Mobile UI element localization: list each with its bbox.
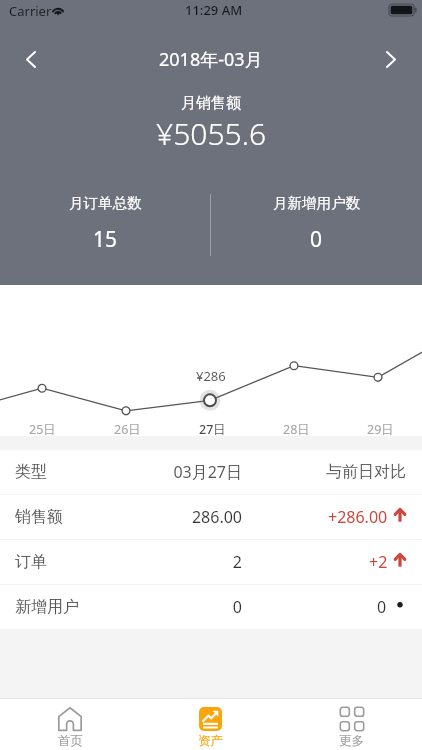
staticText: 29日 [367,421,394,436]
button[interactable]: 首页 [0,699,140,750]
staticText: ¥5055.6 [156,113,267,154]
button[interactable]: 新增用户 [0,585,422,629]
staticText: 订单 [15,552,47,572]
button[interactable]: 更多 [281,699,422,750]
staticText: 新增用户 [15,597,79,617]
staticText: 0 [310,225,323,254]
staticText: 26日 [114,421,141,436]
staticText: 03月27日 [173,461,242,483]
button[interactable]: 订单 [0,540,422,584]
staticText: 资产 [198,733,223,749]
staticText: 更多 [339,733,364,749]
button[interactable]: Next month [369,37,413,81]
staticText: 0 [232,596,242,618]
button[interactable]: 类型 [0,450,422,494]
staticText: 25日 [29,421,56,436]
staticText: 11:29 AM [185,1,243,19]
staticText: 28日 [283,421,310,436]
staticText: 15 [93,225,118,254]
staticText: +286.00 [328,506,388,528]
staticText: 与前日对比 [326,462,406,482]
staticText: 286.00 [191,506,242,528]
staticText: 27日 [199,421,226,436]
staticText: 销售额 [15,507,63,527]
staticText: 2018年-03月 [159,47,263,72]
staticText: ¥286 [196,367,226,385]
button[interactable]: 资产 [140,699,281,750]
staticText: +2 [369,551,388,573]
staticText: 0 [377,596,387,618]
staticText: 2 [232,551,242,573]
staticText: 首页 [58,733,83,749]
staticText: 月新增用户数 [273,194,360,212]
staticText: 月订单总数 [69,194,142,212]
button[interactable]: 销售额 [0,495,422,539]
staticText: Carrier [9,2,52,20]
staticText: 月销售额 [181,94,241,113]
staticText: 类型 [15,462,47,482]
button[interactable]: Previous month [9,37,53,81]
